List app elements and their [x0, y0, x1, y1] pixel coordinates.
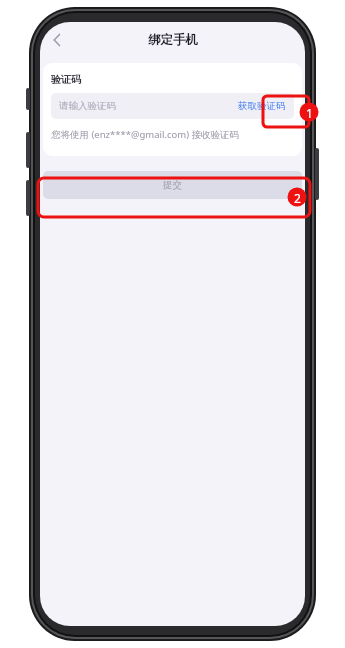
staticText: 绑定手机 — [148, 32, 198, 48]
staticText: 提交 — [163, 179, 182, 191]
button[interactable]: 提交 — [43, 171, 302, 199]
staticText: 验证码 — [51, 73, 81, 86]
button[interactable]: Back — [42, 25, 72, 55]
button[interactable]: 获取验证码 — [234, 100, 286, 112]
staticText: 1 — [306, 105, 313, 121]
staticText: 获取验证码 — [238, 100, 286, 112]
staticText: 2 — [294, 190, 301, 206]
button[interactable]: 请输入验证码 — [59, 100, 234, 112]
staticText: 您将使用 (enz****@gmail.com) 接收验证码 — [51, 128, 240, 141]
